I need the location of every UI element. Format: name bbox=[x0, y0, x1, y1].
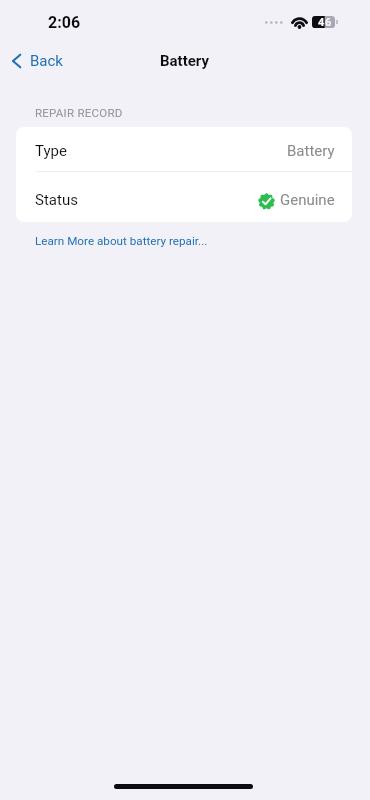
staticText: 4 bbox=[318, 16, 325, 28]
button[interactable]: Back bbox=[0, 48, 73, 74]
other: Battery 46 percent bbox=[312, 16, 338, 28]
staticText: 6 bbox=[325, 16, 332, 28]
staticText: Back bbox=[30, 52, 63, 70]
staticText: Battery bbox=[160, 52, 210, 70]
button[interactable]: Type bbox=[16, 127, 352, 171]
staticText: REPAIR RECORD bbox=[35, 106, 123, 119]
other: Wi-Fi bbox=[291, 17, 308, 28]
staticText: Battery bbox=[287, 142, 335, 160]
staticText: 2:06 bbox=[48, 13, 81, 32]
staticText: Status bbox=[35, 191, 78, 209]
staticText: Genuine bbox=[280, 191, 335, 209]
staticText: Learn More about battery repair... bbox=[35, 234, 208, 248]
button[interactable]: Status bbox=[16, 172, 352, 222]
button[interactable]: Learn More about battery repair... bbox=[0, 227, 224, 254]
staticText: Type bbox=[35, 142, 67, 160]
